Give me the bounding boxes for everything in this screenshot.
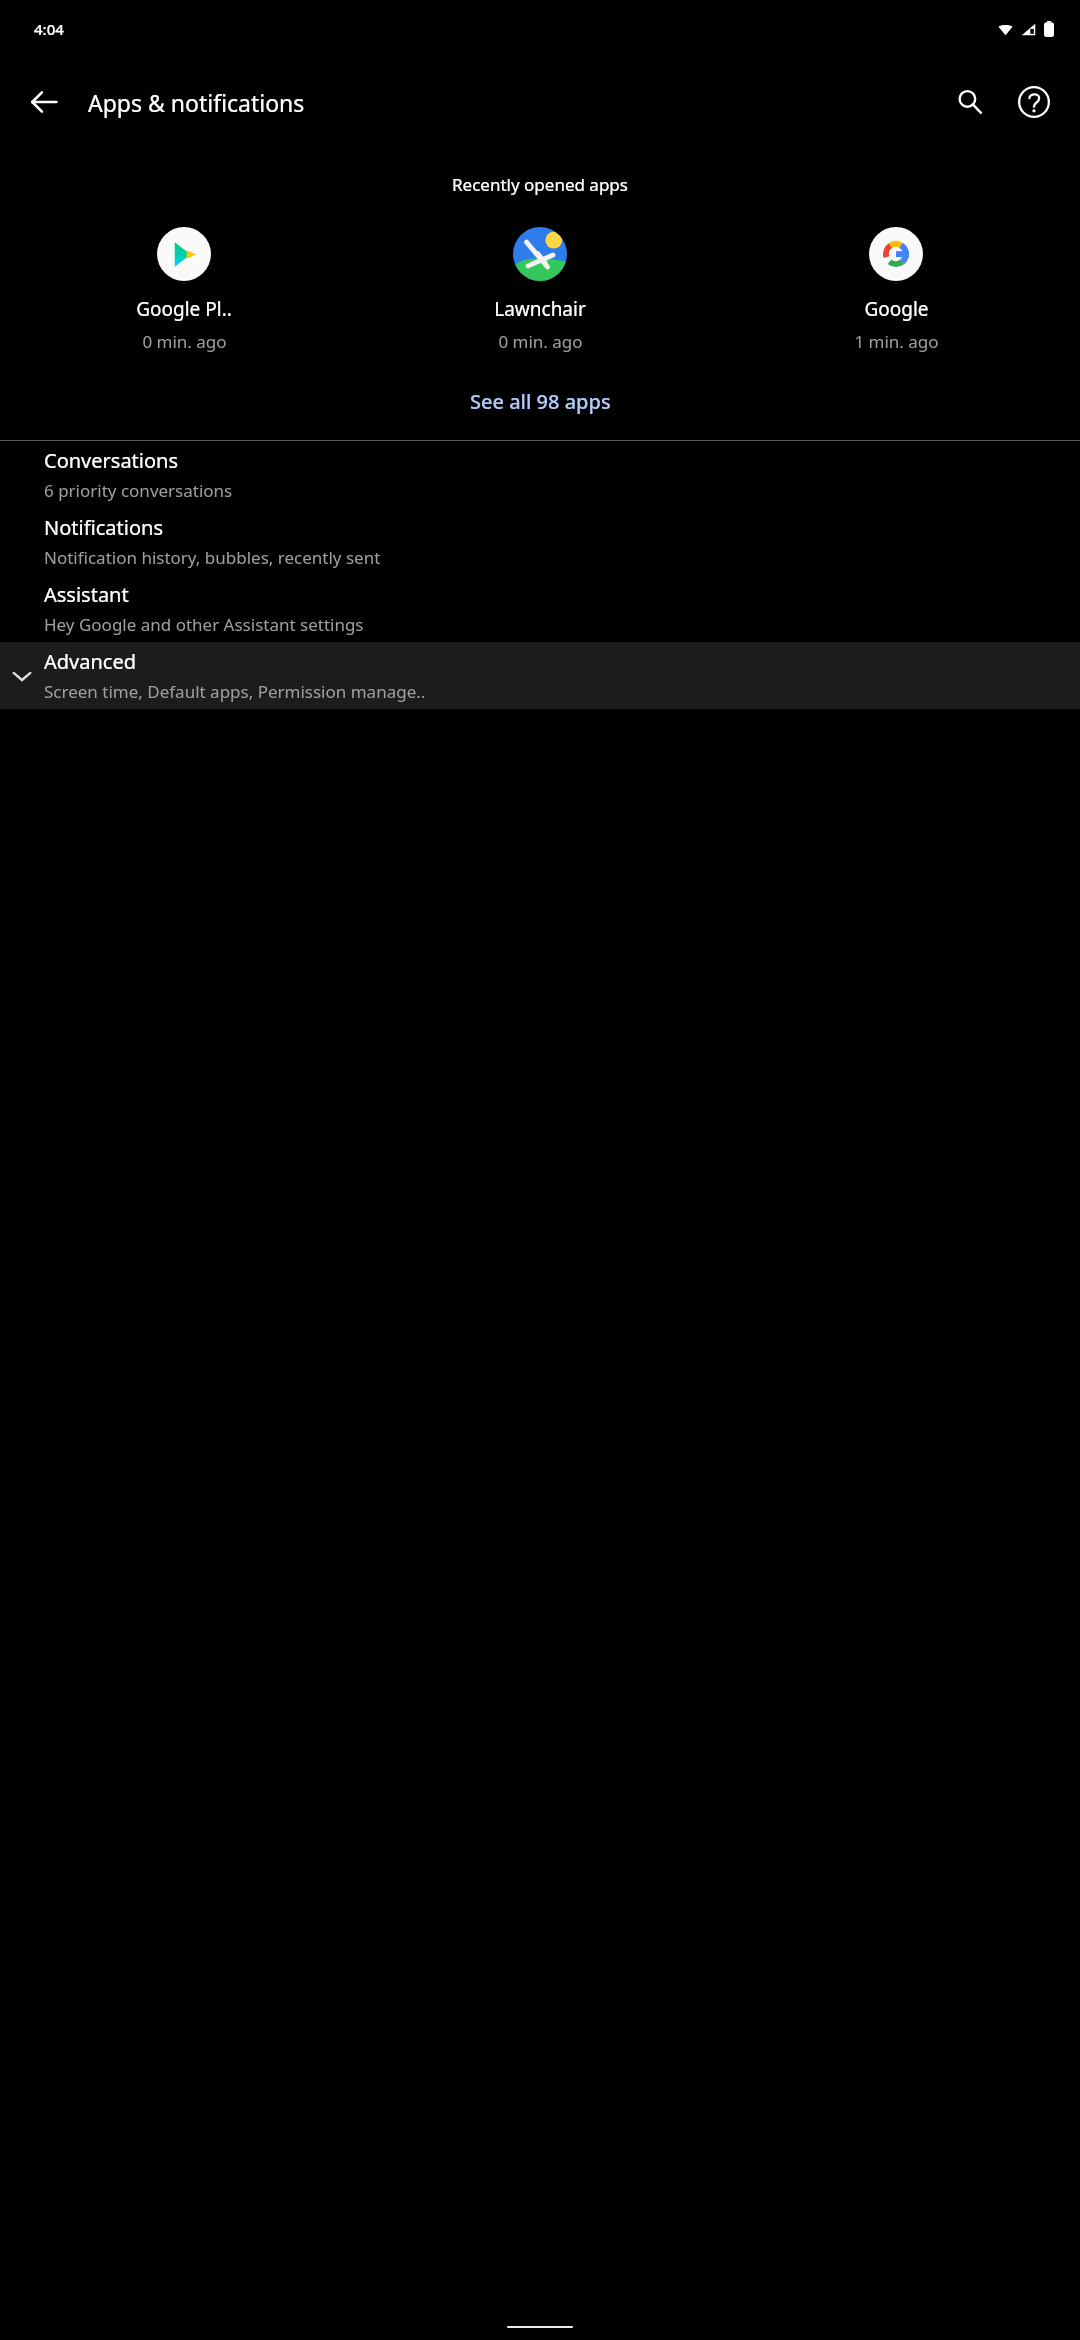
staticText: Screen time, Default apps, Permission ma…: [44, 680, 426, 703]
button[interactable]: Assistant: [0, 575, 1080, 642]
button[interactable]: Google: [718, 225, 1074, 355]
button[interactable]: Back: [8, 66, 80, 138]
staticText: Notifications: [44, 514, 163, 541]
staticText: Google Pl..: [136, 296, 232, 322]
staticText: 0 min. ago: [498, 330, 583, 353]
button[interactable]: See all 98 apps: [444, 377, 637, 426]
button[interactable]: Conversations: [0, 441, 1080, 508]
staticText: See all 98 apps: [470, 388, 611, 415]
staticText: Notification history, bubbles, recently …: [44, 546, 381, 569]
staticText: 4:04: [34, 19, 64, 39]
staticText: Advanced: [44, 648, 136, 675]
staticText: 6 priority conversations: [44, 479, 233, 502]
button[interactable]: Notifications: [0, 508, 1080, 575]
staticText: Recently opened apps: [0, 173, 1080, 196]
staticText: Apps & notifications: [88, 87, 305, 118]
staticText: Hey Google and other Assistant settings: [44, 613, 364, 636]
staticText: Lawnchair: [494, 296, 586, 322]
button[interactable]: Lawnchair: [362, 225, 718, 355]
staticText: 1 min. ago: [854, 330, 939, 353]
staticText: Google: [864, 296, 929, 322]
button[interactable]: Help: [1002, 70, 1066, 134]
staticText: 0 min. ago: [142, 330, 227, 353]
button[interactable]: Search: [938, 70, 1002, 134]
staticText: Assistant: [44, 581, 129, 608]
button[interactable]: Google Pl..: [6, 225, 362, 355]
staticText: Conversations: [44, 447, 179, 474]
button[interactable]: Advanced: [0, 642, 1080, 709]
